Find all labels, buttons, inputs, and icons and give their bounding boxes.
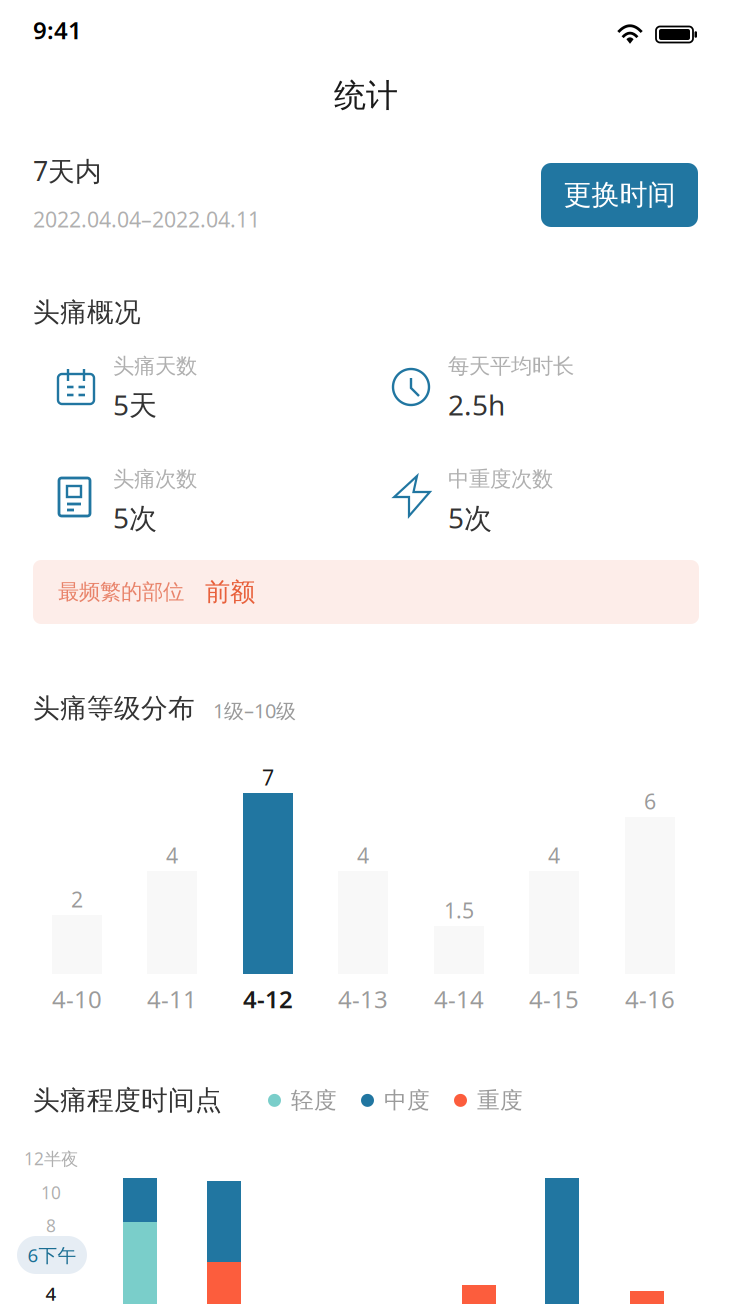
staticText: 4-12 <box>243 983 293 1015</box>
staticText: 中重度次数 <box>448 466 553 492</box>
staticText: 12半夜 <box>24 1147 78 1170</box>
staticText: 7 <box>262 763 274 791</box>
staticText: 2022.04.04–2022.04.11 <box>33 205 260 233</box>
staticText: 1.5 <box>444 896 474 924</box>
staticText: 中度 <box>384 1086 430 1114</box>
staticText: 9:41 <box>33 14 82 46</box>
staticText: 统计 <box>334 76 398 115</box>
staticText: 头痛天数 <box>113 353 197 379</box>
staticText: 头痛等级分布 <box>33 692 195 725</box>
staticText: 4 <box>45 1281 56 1304</box>
staticText: 4-15 <box>529 983 579 1015</box>
staticText: 更换时间 <box>563 178 675 212</box>
staticText: 头痛概况 <box>33 296 141 329</box>
staticText: 5次 <box>448 499 492 536</box>
staticText: 5天 <box>113 386 157 423</box>
staticText: 头痛程度时间点 <box>33 1084 222 1117</box>
staticText: 1级–10级 <box>213 697 296 724</box>
staticText: 4 <box>166 841 178 869</box>
staticText: 8 <box>46 1214 56 1237</box>
staticText: 2.5h <box>448 386 505 423</box>
staticText: 4-13 <box>338 983 388 1015</box>
staticText: 4-11 <box>147 983 197 1015</box>
staticText: 4-16 <box>625 983 675 1015</box>
staticText: 最频繁的部位 <box>58 579 184 605</box>
staticText: 10 <box>41 1181 61 1204</box>
button[interactable]: 更换时间 <box>541 163 698 227</box>
staticText: 4-14 <box>434 983 484 1015</box>
staticText: 4 <box>357 841 369 869</box>
staticText: 前额 <box>205 576 255 607</box>
staticText: 5次 <box>113 499 157 536</box>
staticText: 6 <box>644 787 656 815</box>
staticText: 2 <box>71 885 83 913</box>
staticText: 7天内 <box>33 153 102 188</box>
staticText: 每天平均时长 <box>448 353 574 379</box>
staticText: 头痛次数 <box>113 466 197 492</box>
staticText: 6下午 <box>27 1243 76 1267</box>
staticText: 轻度 <box>291 1086 337 1114</box>
staticText: 4 <box>548 841 560 869</box>
staticText: 重度 <box>477 1086 523 1114</box>
staticText: 4-10 <box>52 983 102 1015</box>
